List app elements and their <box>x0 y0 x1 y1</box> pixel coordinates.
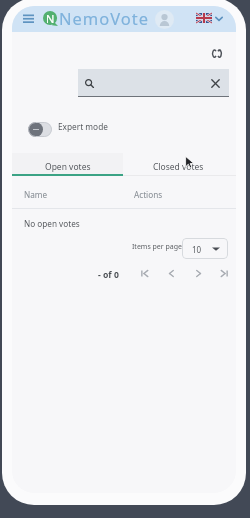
button[interactable]: Go to first page <box>139 268 150 279</box>
staticText: Items per page <box>132 242 183 252</box>
staticText: NemoVote <box>59 7 150 29</box>
button[interactable]: Clear search <box>78 69 229 97</box>
staticText: Open votes <box>45 161 91 173</box>
button[interactable]: Previous page <box>166 268 177 279</box>
button[interactable]: Expert mode <box>28 121 108 138</box>
button[interactable]: Closed votes <box>123 155 234 179</box>
button[interactable]: Open votes <box>12 155 123 179</box>
staticText: Name <box>24 189 48 200</box>
staticText: Actions <box>134 189 163 200</box>
button[interactable]: 10 <box>182 238 228 259</box>
button[interactable]: Menu <box>23 13 34 24</box>
button[interactable]: Next page <box>193 268 204 279</box>
staticText: - of 0 <box>98 269 119 281</box>
staticText: No open votes <box>24 218 80 229</box>
button[interactable]: Refresh <box>211 48 223 60</box>
button[interactable]: Language <box>196 13 212 23</box>
staticText: Expert mode <box>58 121 108 132</box>
staticText: Closed votes <box>153 161 204 173</box>
staticText: N <box>46 11 55 26</box>
button[interactable]: Go to last page <box>219 268 230 279</box>
staticText: 10 <box>192 244 202 255</box>
button[interactable]: Clear search <box>211 79 220 88</box>
button[interactable]: Profile <box>155 10 174 29</box>
